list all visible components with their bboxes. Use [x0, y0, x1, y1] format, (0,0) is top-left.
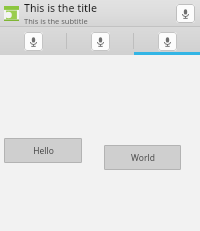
staticText: Hello [33, 145, 54, 157]
button[interactable]: Voice search [176, 4, 195, 23]
staticText: World [131, 152, 155, 164]
button[interactable]: Tab 1 [0, 27, 66, 55]
button[interactable]: Tab 2 [67, 27, 133, 55]
button[interactable]: Tab 3 [134, 27, 200, 55]
staticText: This is the subtitle [24, 16, 88, 26]
button[interactable]: World [104, 145, 181, 170]
button[interactable]: Hello [4, 138, 82, 163]
staticText: This is the title [24, 1, 97, 15]
